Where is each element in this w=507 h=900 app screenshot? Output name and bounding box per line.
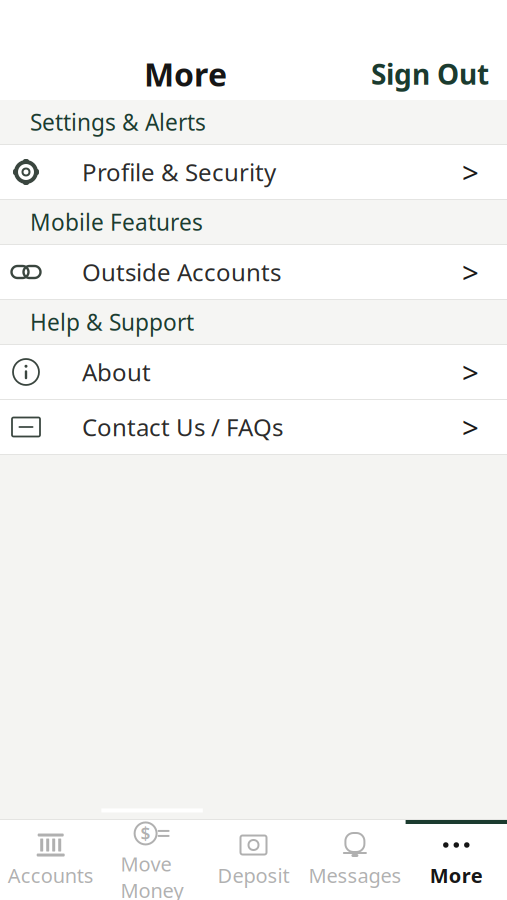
button[interactable]: Deposit [203,820,304,900]
staticText: > [462,407,479,446]
staticText: Profile & Security [82,156,276,188]
staticText: > [462,352,479,391]
staticText: $ [141,822,151,845]
button[interactable]: Sign Out [371,47,507,101]
button[interactable]: $ [101,820,203,900]
staticText: Sign Out [371,55,489,93]
staticText: About [82,356,151,388]
staticText: Mobile Features [30,207,203,237]
staticText: Messages [308,862,401,889]
staticText: Contact Us / FAQs [82,411,283,443]
staticText: Help & Support [30,307,194,337]
staticText: > [462,252,479,291]
staticText: More [430,862,483,889]
staticText: > [462,152,479,191]
staticText: Settings & Alerts [30,107,206,137]
button[interactable]: Accounts [0,820,101,900]
staticText: Move Money [121,850,184,900]
button[interactable]: Profile & Security [0,145,507,200]
staticText: Outside Accounts [82,256,281,288]
staticText: More [144,53,227,95]
button[interactable]: About [0,345,507,400]
staticText: Accounts [8,862,94,889]
staticText: Deposit [217,862,289,889]
button[interactable]: Messages [304,820,406,900]
button[interactable]: More [406,820,507,900]
button[interactable]: Contact Us / FAQs [0,400,507,455]
button[interactable]: Outside Accounts [0,245,507,300]
